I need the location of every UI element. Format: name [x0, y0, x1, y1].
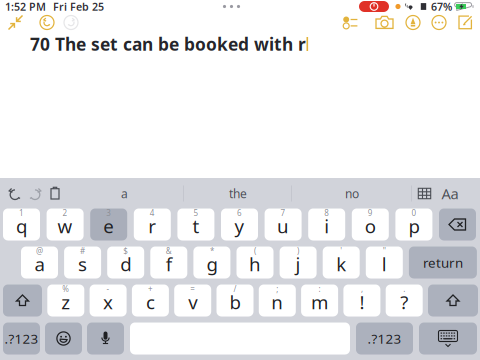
- staticText: *: [210, 246, 214, 256]
- staticText: l: [382, 252, 387, 276]
- staticText: ": [383, 246, 386, 256]
- staticText: 67%: [431, 0, 452, 14]
- button[interactable]: =: [174, 284, 211, 316]
- staticText: x: [103, 290, 113, 314]
- button[interactable]: return: [409, 246, 477, 278]
- staticText: 1: [19, 208, 24, 218]
- staticText: 4: [150, 208, 155, 218]
- staticText: ?: [400, 290, 408, 314]
- button[interactable]: .?123: [356, 322, 413, 354]
- button[interactable]: Collapse: [7, 14, 24, 31]
- button[interactable]: 1: [3, 208, 40, 240]
- button[interactable]: Insert Table: [412, 179, 437, 207]
- staticText: a: [121, 185, 128, 201]
- button[interactable]: the: [184, 179, 292, 207]
- staticText: ;: [276, 284, 278, 294]
- staticText: n: [271, 290, 283, 314]
- staticText: %: [62, 284, 69, 294]
- staticText: -: [107, 284, 110, 294]
- button[interactable]: 6: [221, 208, 258, 240]
- button[interactable]: .: [386, 284, 423, 316]
- staticText: =: [190, 284, 195, 294]
- staticText: .?123: [4, 330, 38, 347]
- staticText: j: [296, 252, 301, 276]
- button[interactable]: New Note: [457, 14, 473, 30]
- staticText: y: [234, 214, 244, 238]
- staticText: g: [206, 252, 217, 276]
- button[interactable]: 4: [134, 208, 171, 240]
- staticText: ': [340, 246, 342, 256]
- button[interactable]: Space: [130, 322, 350, 354]
- button[interactable]: :: [301, 284, 338, 316]
- staticText: a: [34, 252, 44, 276]
- staticText: k: [336, 252, 346, 276]
- staticText: r: [148, 214, 156, 238]
- button[interactable]: 0: [395, 208, 432, 240]
- staticText: .?123: [367, 330, 401, 347]
- staticText: ): [297, 246, 299, 256]
- button[interactable]: Markup: [405, 14, 421, 30]
- staticText: h: [249, 252, 261, 276]
- staticText: 3: [106, 208, 111, 218]
- staticText: 8: [324, 208, 329, 218]
- button[interactable]: -: [90, 284, 127, 316]
- staticText: u: [277, 214, 289, 238]
- staticText: i: [324, 214, 329, 238]
- button[interactable]: 2: [47, 208, 84, 240]
- button[interactable]: Redo: [63, 14, 79, 30]
- button[interactable]: &: [150, 246, 187, 278]
- staticText: t: [192, 214, 199, 238]
- button[interactable]: ): [280, 246, 317, 278]
- button[interactable]: Undo: [5, 179, 25, 207]
- button[interactable]: More: [431, 14, 447, 30]
- staticText: &: [166, 246, 172, 256]
- button[interactable]: (: [236, 246, 273, 278]
- staticText: v: [188, 290, 197, 314]
- button[interactable]: Hide Keyboard: [419, 322, 477, 354]
- staticText: z: [61, 290, 70, 314]
- button[interactable]: Undo: [39, 14, 55, 30]
- staticText: !: [359, 290, 364, 314]
- button[interactable]: #: [64, 246, 101, 278]
- button[interactable]: ;: [259, 284, 296, 316]
- button[interactable]: Aa: [437, 179, 463, 207]
- staticText: m: [311, 290, 328, 314]
- button[interactable]: +: [132, 284, 169, 316]
- staticText: Fri Feb 25: [53, 0, 104, 14]
- button[interactable]: Shift: [3, 284, 42, 316]
- button[interactable]: Emoji: [45, 322, 82, 354]
- button[interactable]: ': [323, 246, 360, 278]
- button[interactable]: Checklist: [343, 15, 358, 29]
- button[interactable]: 5: [177, 208, 214, 240]
- staticText: 1:52 PM: [5, 0, 46, 14]
- staticText: 7: [281, 208, 286, 218]
- button[interactable]: .?123: [3, 322, 40, 354]
- button[interactable]: @: [21, 246, 58, 278]
- button[interactable]: 8: [308, 208, 345, 240]
- button[interactable]: %: [47, 284, 84, 316]
- button[interactable]: Delete: [439, 208, 476, 240]
- button[interactable]: Redo: [25, 179, 45, 207]
- button[interactable]: ": [366, 246, 403, 278]
- button[interactable]: 9: [352, 208, 389, 240]
- button[interactable]: Shift: [428, 284, 478, 316]
- button[interactable]: 7: [265, 208, 302, 240]
- button[interactable]: no: [292, 179, 412, 207]
- staticText: w: [58, 214, 73, 238]
- button[interactable]: Paste: [45, 179, 65, 207]
- button[interactable]: ,: [343, 284, 380, 316]
- button[interactable]: /: [216, 284, 253, 316]
- button[interactable]: 3: [90, 208, 127, 240]
- staticText: (: [254, 246, 256, 256]
- staticText: $: [123, 246, 128, 256]
- button[interactable]: a: [65, 179, 184, 207]
- button[interactable]: Dictation: [87, 322, 124, 354]
- staticText: .: [403, 284, 405, 294]
- staticText: return: [423, 254, 463, 271]
- button[interactable]: $: [107, 246, 144, 278]
- button[interactable]: *: [193, 246, 230, 278]
- staticText: 0: [411, 208, 416, 218]
- staticText: 2: [63, 208, 68, 218]
- staticText: 9: [368, 208, 373, 218]
- button[interactable]: Camera: [375, 15, 394, 30]
